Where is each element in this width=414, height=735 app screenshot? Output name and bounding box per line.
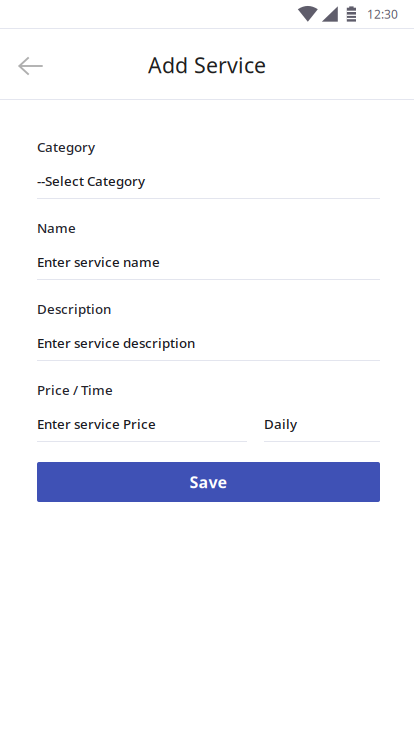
staticText: Enter service Price (37, 415, 156, 433)
staticText: Save (189, 471, 227, 493)
staticText: --Select Category (37, 172, 145, 190)
staticText: Name (37, 219, 76, 237)
staticText: Enter service description (37, 334, 195, 352)
staticText: Add Service (148, 51, 266, 79)
staticText: Price / Time (37, 381, 113, 399)
button[interactable]: Save (37, 462, 380, 502)
staticText: Daily (264, 415, 297, 433)
staticText: Enter service name (37, 253, 160, 271)
staticText: Description (37, 300, 111, 318)
staticText: Category (37, 138, 95, 156)
button[interactable]: Back (3, 27, 59, 101)
staticText: 12:30 (367, 6, 398, 22)
